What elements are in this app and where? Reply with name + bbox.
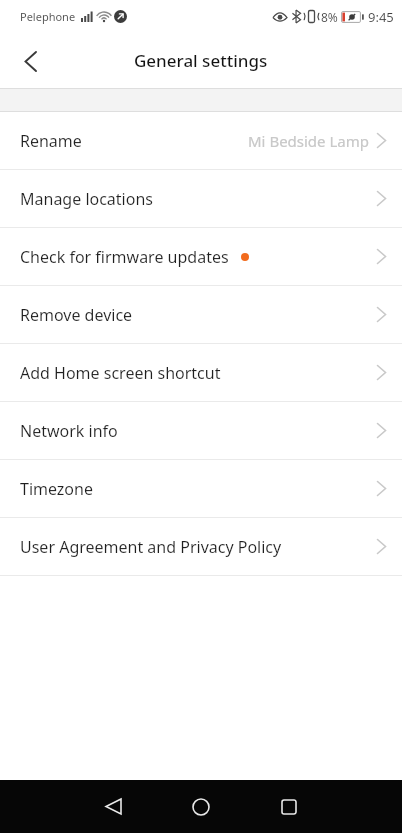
button[interactable]: Add Home screen shortcut [0,344,402,402]
button[interactable] [245,780,333,833]
button[interactable]: Check for firmware updates [0,228,402,286]
button[interactable]: User Agreement and Privacy Policy [0,518,402,576]
staticText: Network info [20,420,118,442]
staticText: Remove device [20,304,133,326]
button[interactable]: Remove device [0,286,402,344]
staticText: Mi Bedside Lamp [248,131,369,151]
button[interactable]: Network info [0,402,402,460]
staticText: Timezone [20,478,93,500]
button[interactable]: Manage locations [0,170,402,228]
staticText: Add Home screen shortcut [20,362,221,384]
staticText: Check for firmware updates [20,246,229,268]
staticText: User Agreement and Privacy Policy [20,536,282,558]
staticText: Rename [20,130,82,152]
button[interactable] [157,780,245,833]
staticText: Pelephone [20,9,76,24]
staticText: 8% [321,9,338,25]
button[interactable]: Rename [0,112,402,170]
button[interactable] [69,780,157,833]
staticText: 9:45 [368,8,394,26]
button[interactable]: Timezone [0,460,402,518]
staticText: General settings [134,49,268,72]
staticText: Manage locations [20,188,153,210]
button[interactable] [14,45,46,77]
